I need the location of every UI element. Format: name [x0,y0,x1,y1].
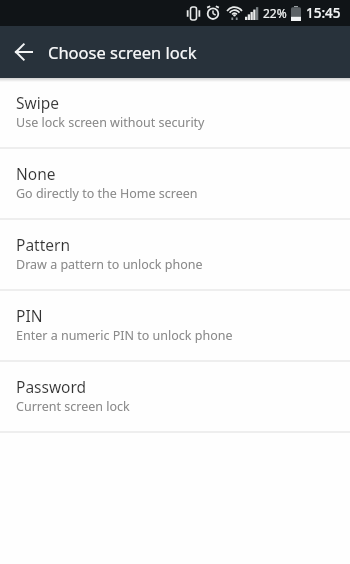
button[interactable]: PIN [0,291,350,360]
button[interactable]: None [0,149,350,218]
button[interactable]: Password [0,362,350,431]
button[interactable] [0,26,48,78]
button[interactable]: Pattern [0,220,350,289]
staticText: None [16,163,56,184]
staticText: Draw a pattern to unlock phone [16,256,203,273]
staticText: Enter a numeric PIN to unlock phone [16,327,233,344]
staticText: Pattern [16,234,70,255]
staticText: PIN [16,305,43,326]
staticText: Current screen lock [16,398,130,415]
staticText: Use lock screen without security [16,114,205,131]
staticText: Choose screen lock [48,41,197,63]
staticText: Swipe [16,92,59,113]
staticText: 22% [263,5,287,21]
button[interactable]: Swipe [0,78,350,147]
staticText: Password [16,376,87,397]
staticText: 15:45 [306,4,341,22]
staticText: Go directly to the Home screen [16,185,198,202]
